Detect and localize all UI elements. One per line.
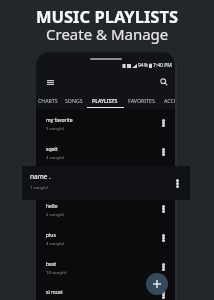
button[interactable]: best [36,253,175,282]
staticText: hello [46,203,58,210]
button[interactable]: ACCOUNT [158,93,175,107]
staticText: my favorite [46,117,73,124]
button[interactable]: plus [36,224,175,253]
staticText: plus [46,232,56,239]
staticText: 4 song(s) [46,154,65,160]
staticText: 2 song(s) [46,211,65,217]
button[interactable]: name . [22,166,190,200]
button[interactable]: SONGS [56,93,92,107]
button[interactable]: More options [158,117,169,128]
button[interactable]: CHARTS [36,93,66,107]
staticText: name . [30,172,51,181]
button[interactable]: More options [36,166,175,195]
staticText: 4 song(s) [46,240,65,246]
button[interactable]: More options [158,232,169,243]
button[interactable]: hello [36,195,175,224]
button[interactable]: More options [158,289,169,300]
staticText: best [46,261,57,268]
button[interactable]: my favorite [36,109,175,138]
staticText: Create & Manage [46,24,169,44]
staticText: 3 song(s) [46,125,65,131]
button[interactable]: More options [158,203,169,214]
button[interactable]: PLAYLISTS [87,93,123,107]
staticText: 7:40 PM [153,62,172,69]
button[interactable]: Add playlist [146,273,168,295]
staticText: ACCOUNT [164,97,175,104]
staticText: PLAYLISTS [92,97,118,104]
staticText: 94% [138,62,148,69]
button[interactable]: More options [171,177,184,190]
staticText: CHARTS [38,97,58,104]
button[interactable]: Menu [42,74,58,90]
staticText: sqett [46,146,58,153]
button[interactable]: More options [158,146,169,157]
button[interactable]: More options [158,261,169,272]
staticText: 10 song(s) [46,269,67,275]
staticText: MUSIC PLAYLISTS [36,5,178,27]
button[interactable]: si musi [36,281,175,300]
staticText: FAVORITES [128,97,155,104]
staticText: 1 song(s) [30,185,48,191]
staticText: SONGS [65,97,83,104]
button[interactable]: sqett [36,138,175,167]
button[interactable]: FAVORITES [123,93,159,107]
button[interactable]: Search [156,74,172,90]
staticText: si musi [46,289,63,296]
